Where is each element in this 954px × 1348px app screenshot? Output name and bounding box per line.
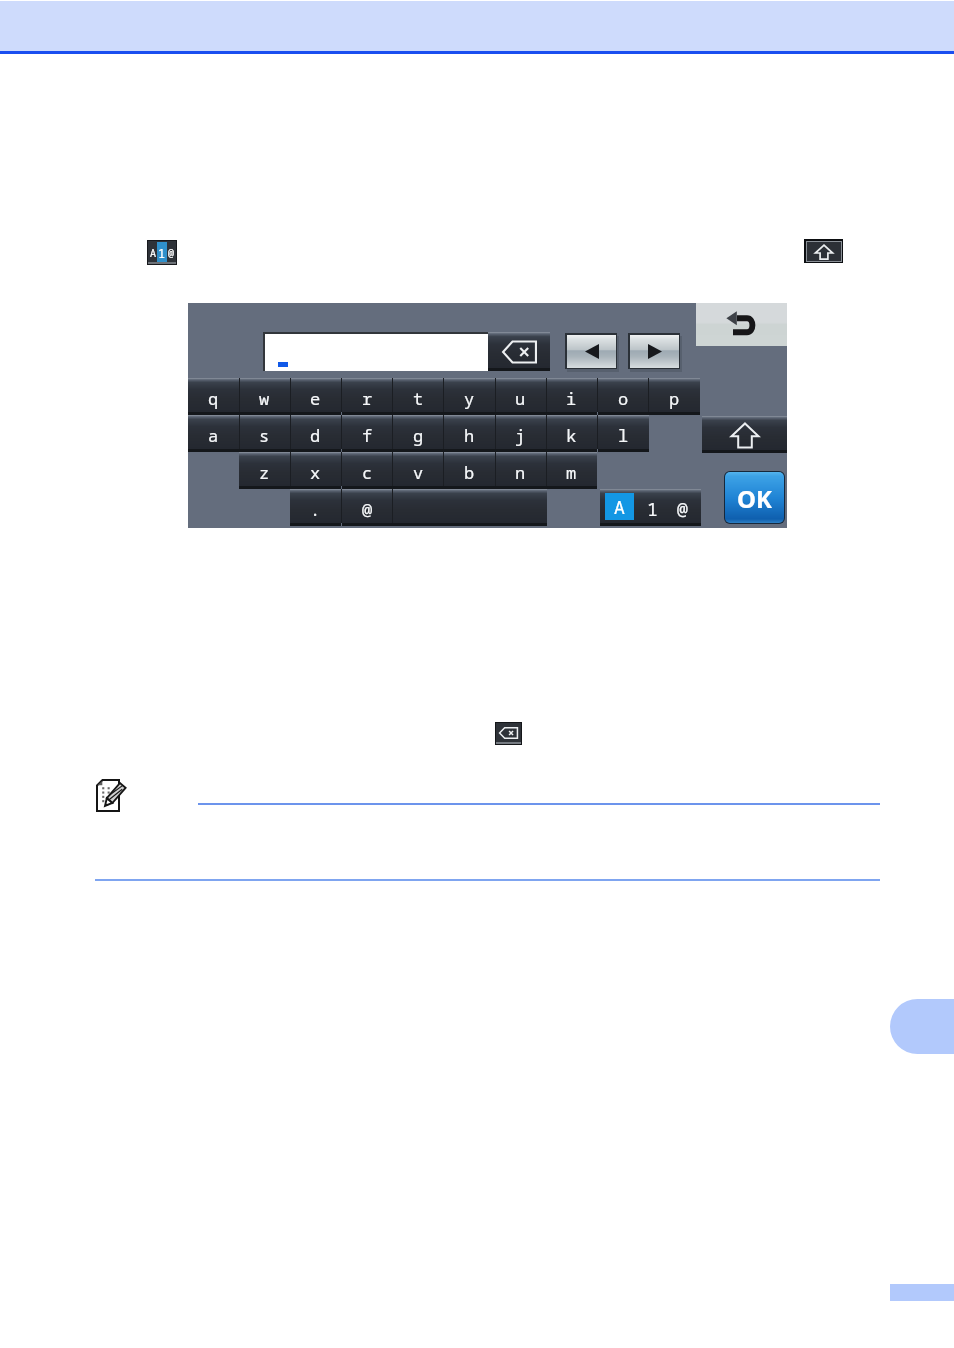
staticText: d xyxy=(310,424,321,447)
button[interactable]: w xyxy=(239,378,290,412)
button[interactable]: g xyxy=(393,415,444,449)
staticText: a xyxy=(208,424,219,447)
staticText: A xyxy=(150,246,156,258)
button[interactable]: . xyxy=(290,489,341,523)
button[interactable]: f xyxy=(342,415,393,449)
staticText: k xyxy=(566,424,577,447)
staticText: o xyxy=(618,387,629,410)
staticText: s xyxy=(259,424,270,447)
staticText: q xyxy=(208,387,219,410)
staticText: x xyxy=(310,461,321,484)
button[interactable]: j xyxy=(495,415,546,449)
button[interactable]: l xyxy=(598,415,649,449)
staticText: n xyxy=(515,461,526,484)
button[interactable]: Backspace xyxy=(488,332,550,368)
button[interactable]: Space xyxy=(393,489,547,523)
button[interactable]: c xyxy=(342,452,393,486)
button[interactable]: o xyxy=(598,378,649,412)
button[interactable]: v xyxy=(393,452,444,486)
button[interactable]: Move cursor right xyxy=(628,333,680,369)
staticText: h xyxy=(464,424,475,447)
staticText: @ xyxy=(677,497,688,522)
button[interactable]: s xyxy=(239,415,290,449)
staticText: r xyxy=(362,387,373,410)
staticText: u xyxy=(515,387,526,410)
button[interactable]: Move cursor left xyxy=(565,333,617,369)
staticText: 1 xyxy=(158,245,166,259)
staticText: j xyxy=(515,424,526,447)
staticText: 1 xyxy=(647,497,658,522)
staticText: e xyxy=(310,387,321,410)
staticText: A xyxy=(614,495,625,520)
staticText: @ xyxy=(168,246,174,258)
button[interactable]: u xyxy=(495,378,546,412)
staticText: f xyxy=(362,424,373,447)
button[interactable]: m xyxy=(546,452,597,486)
staticText: p xyxy=(669,387,680,410)
button[interactable]: Back xyxy=(696,303,787,346)
staticText: l xyxy=(618,424,629,447)
staticText: v xyxy=(413,461,424,484)
button[interactable]: Switch character type xyxy=(600,489,701,523)
button[interactable]: d xyxy=(290,415,341,449)
button[interactable]: Shift xyxy=(702,416,787,450)
button[interactable]: b xyxy=(444,452,495,486)
staticText: w xyxy=(259,387,270,410)
staticText: t xyxy=(413,387,424,410)
staticText: b xyxy=(464,461,475,484)
staticText: c xyxy=(362,461,373,484)
staticText: m xyxy=(566,461,577,484)
button[interactable]: q xyxy=(188,378,239,412)
button[interactable]: h xyxy=(444,415,495,449)
button[interactable]: a xyxy=(188,415,239,449)
button[interactable]: r xyxy=(342,378,393,412)
button[interactable]: OK xyxy=(725,472,784,523)
staticText: OK xyxy=(737,482,772,515)
staticText: z xyxy=(259,461,270,484)
button[interactable]: i xyxy=(546,378,597,412)
button[interactable]: e xyxy=(290,378,341,412)
button[interactable]: t xyxy=(393,378,444,412)
staticText: @ xyxy=(362,498,373,521)
button[interactable]: p xyxy=(649,378,700,412)
button[interactable]: k xyxy=(546,415,597,449)
staticText: y xyxy=(464,387,475,410)
staticText: i xyxy=(566,387,577,410)
staticText: . xyxy=(310,498,321,521)
button[interactable]: n xyxy=(495,452,546,486)
button[interactable]: y xyxy=(444,378,495,412)
staticText: g xyxy=(413,424,424,447)
button[interactable]: z xyxy=(239,452,290,486)
button[interactable]: x xyxy=(290,452,341,486)
button[interactable]: @ xyxy=(342,489,393,523)
